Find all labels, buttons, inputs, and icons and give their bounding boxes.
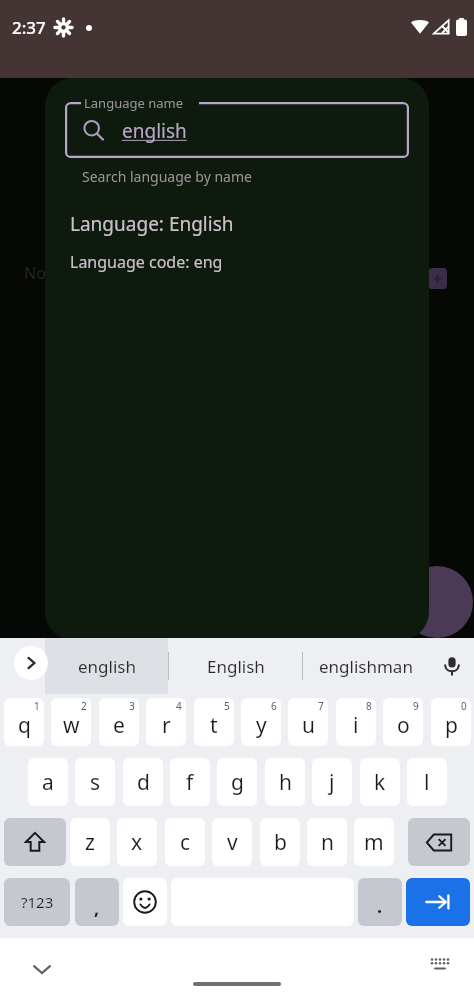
staticText: l [424, 768, 430, 797]
staticText: English [207, 655, 265, 678]
button[interactable]: c [165, 818, 205, 866]
button[interactable]: Expand suggestions [14, 646, 48, 680]
button[interactable]: q [4, 698, 44, 746]
staticText: english [78, 655, 136, 678]
button[interactable]: s [75, 758, 115, 806]
staticText: o [397, 711, 410, 740]
staticText: f [186, 768, 194, 797]
button[interactable]: t [194, 698, 234, 746]
staticText: 1 [34, 699, 40, 713]
button[interactable]: Emoji [123, 878, 167, 926]
staticText: 4 [176, 699, 182, 713]
staticText: 6 [271, 699, 277, 713]
button[interactable]: f [170, 758, 210, 806]
staticText: englishman [319, 655, 413, 678]
button[interactable]: o [383, 698, 423, 746]
button[interactable]: i [336, 698, 376, 746]
button[interactable]: x [117, 818, 157, 866]
button[interactable]: w [51, 698, 91, 746]
staticText: 2 [81, 699, 87, 713]
staticText: , [94, 896, 100, 921]
staticText: 0 [461, 699, 467, 713]
staticText: 5 [224, 699, 230, 713]
staticText: v [227, 828, 238, 857]
button[interactable]: ?123 [4, 878, 70, 926]
button[interactable]: m [354, 818, 394, 866]
staticText: 8 [366, 699, 372, 713]
button[interactable]: h [265, 758, 305, 806]
button[interactable]: English [169, 638, 302, 694]
staticText: ?123 [21, 892, 54, 912]
staticText: s [90, 768, 101, 797]
staticText: u [302, 711, 315, 740]
staticText: a [42, 768, 54, 797]
button[interactable]: . [358, 878, 402, 926]
staticText: Language name [84, 94, 183, 112]
button[interactable]: u [288, 698, 328, 746]
staticText: 3 [129, 699, 135, 713]
button[interactable]: k [360, 758, 400, 806]
button[interactable]: d [123, 758, 163, 806]
staticText: Language: English [70, 211, 234, 237]
button[interactable]: n [307, 818, 347, 866]
button[interactable]: g [217, 758, 257, 806]
staticText: r [162, 711, 171, 740]
staticText: d [137, 768, 150, 797]
staticText: p [445, 711, 458, 740]
button[interactable]: englishman [303, 638, 428, 694]
button[interactable]: r [146, 698, 186, 746]
staticText: t [210, 711, 218, 740]
button[interactable]: a [28, 758, 68, 806]
button[interactable]: english [65, 102, 409, 158]
button[interactable]: Next [406, 878, 470, 926]
staticText: . [377, 894, 383, 919]
button[interactable]: y [241, 698, 281, 746]
staticText: e [113, 711, 125, 740]
button[interactable]: Shift [4, 818, 66, 866]
staticText: 7 [318, 699, 324, 713]
button[interactable]: e [99, 698, 139, 746]
staticText: Language code: eng [70, 251, 223, 273]
button[interactable]: b [260, 818, 300, 866]
button[interactable]: Home [193, 982, 281, 986]
staticText: english [122, 118, 187, 144]
button[interactable]: Add [428, 268, 447, 289]
staticText: m [364, 828, 384, 857]
button[interactable]: p [431, 698, 471, 746]
staticText: h [279, 768, 292, 797]
button[interactable]: z [70, 818, 110, 866]
staticText: i [353, 711, 359, 740]
button[interactable]: Backspace [408, 818, 470, 866]
staticText: Search language by name [82, 167, 252, 186]
staticText: y [256, 711, 267, 740]
staticText: w [63, 711, 80, 740]
staticText: z [85, 828, 95, 857]
button[interactable]: Voice input [430, 638, 474, 694]
button[interactable]: j [312, 758, 352, 806]
staticText: n [321, 828, 334, 857]
staticText: 2:37 [12, 16, 46, 39]
button[interactable]: v [212, 818, 252, 866]
staticText: c [180, 828, 191, 857]
staticText: x [131, 828, 143, 857]
staticText: q [18, 711, 31, 740]
button[interactable]: english [45, 638, 168, 694]
staticText: g [231, 768, 244, 797]
staticText: b [274, 828, 287, 857]
button[interactable]: Hide keyboard [14, 938, 70, 1000]
button[interactable]: l [407, 758, 447, 806]
staticText: No [24, 262, 46, 284]
staticText: j [329, 768, 335, 797]
staticText: 9 [413, 699, 419, 713]
button[interactable]: , [75, 878, 119, 926]
button[interactable]: Switch keyboard [418, 942, 462, 986]
staticText: k [374, 768, 386, 797]
